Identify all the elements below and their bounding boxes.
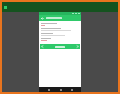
- button[interactable]: [41, 38, 79, 42]
- button[interactable]: Previous: [40, 44, 80, 49]
- button[interactable]: [41, 28, 79, 32]
- button[interactable]: Next: [75, 44, 80, 49]
- button[interactable]: [41, 23, 79, 27]
- button[interactable]: Home: [58, 87, 63, 92]
- button[interactable]: Back: [39, 15, 45, 21]
- button[interactable]: Recents: [69, 87, 74, 92]
- button[interactable]: Back: [46, 87, 51, 92]
- button[interactable]: [41, 33, 79, 37]
- button[interactable]: Previous: [40, 44, 45, 49]
